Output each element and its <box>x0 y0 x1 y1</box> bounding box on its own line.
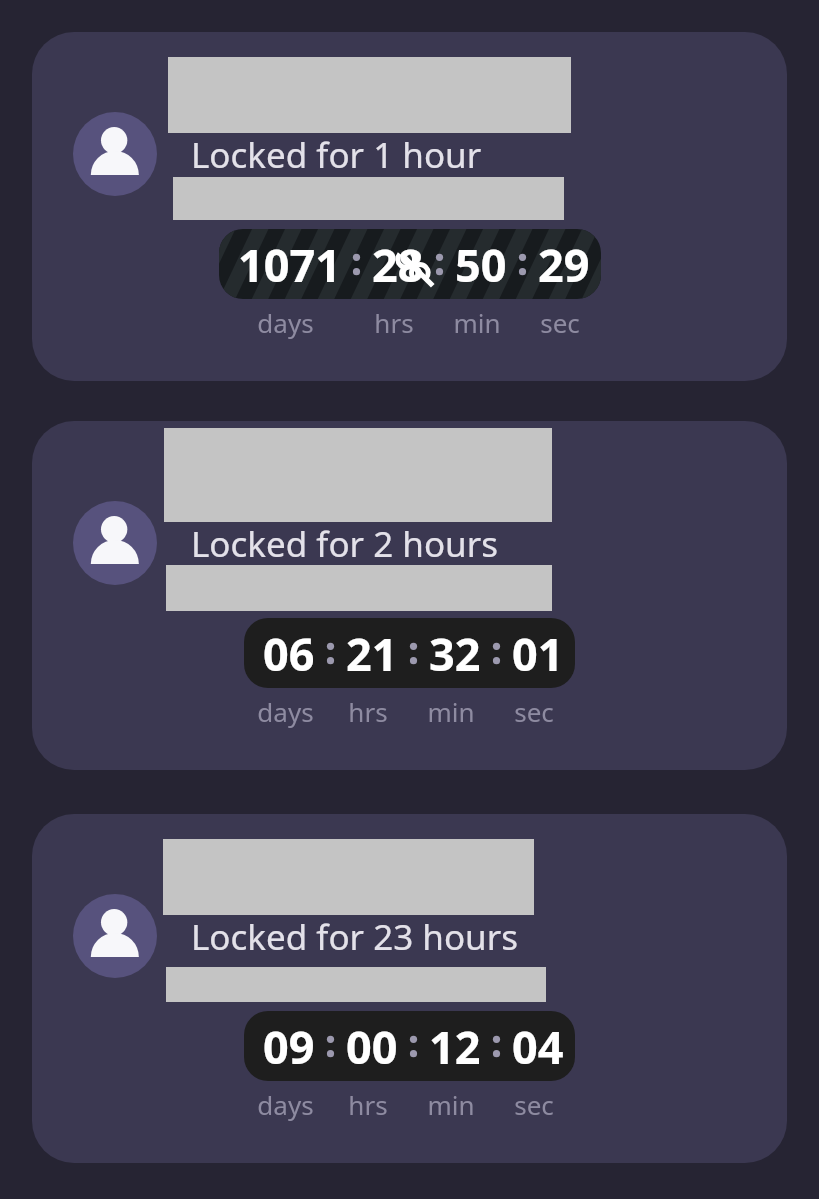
staticText: 1071 <box>238 234 341 295</box>
button[interactable]: 1071 <box>219 229 601 299</box>
staticText: days <box>257 1087 314 1122</box>
staticText: min <box>453 305 501 340</box>
staticText: Locked for 2 hours <box>191 520 498 568</box>
other: Profile avatar <box>73 112 157 196</box>
staticText: sec <box>514 1087 554 1122</box>
staticText: 21 <box>346 623 398 684</box>
staticText: hrs <box>348 1087 388 1122</box>
staticText: hrs <box>374 305 414 340</box>
other: Link broken <box>394 247 432 285</box>
staticText: 28 <box>372 234 424 295</box>
staticText: hrs <box>348 694 388 729</box>
staticText: 12 <box>429 1016 481 1077</box>
button[interactable]: 06 <box>244 618 575 688</box>
button[interactable]: Profile avatar <box>32 32 787 381</box>
other: Profile avatar <box>73 501 157 585</box>
staticText: days <box>257 305 314 340</box>
button[interactable]: 09 <box>244 1011 575 1081</box>
staticText: Locked for 23 hours <box>191 913 518 961</box>
staticText: 00 <box>346 1016 398 1077</box>
staticText: sec <box>514 694 554 729</box>
staticText: days <box>257 694 314 729</box>
staticText: 06 <box>263 623 315 684</box>
staticText: min <box>427 1087 475 1122</box>
staticText: min <box>427 694 475 729</box>
staticText: 04 <box>512 1016 564 1077</box>
staticText: Locked for 1 hour <box>191 131 482 179</box>
staticText: 29 <box>538 234 590 295</box>
staticText: sec <box>540 305 580 340</box>
staticText: 50 <box>455 234 507 295</box>
staticText: 09 <box>263 1016 315 1077</box>
button[interactable]: Profile avatar <box>32 814 787 1163</box>
staticText: 32 <box>429 623 481 684</box>
staticText: 01 <box>512 623 564 684</box>
other: Profile avatar <box>73 894 157 978</box>
button[interactable]: Profile avatar <box>32 421 787 770</box>
